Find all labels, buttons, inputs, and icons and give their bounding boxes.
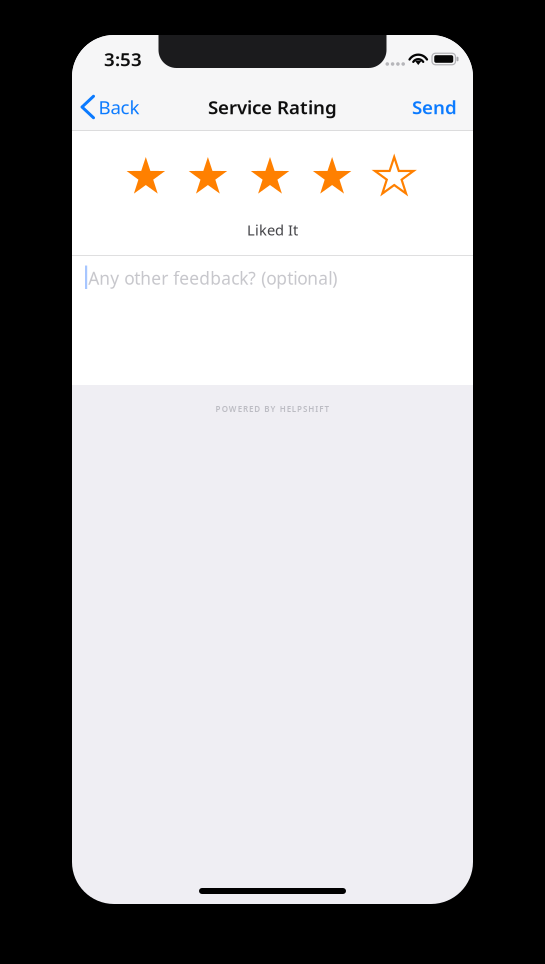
button[interactable]: Rate 3 stars	[251, 157, 289, 192]
staticText: Back	[98, 95, 139, 119]
button[interactable]: Rate 5 stars	[375, 157, 413, 192]
staticText: Send	[412, 95, 457, 119]
staticText: POWERED BY HELPSHIFT	[216, 404, 329, 414]
button[interactable]: Any other feedback? (optional)	[72, 256, 473, 385]
button[interactable]: Rate 2 stars	[189, 157, 227, 192]
button[interactable]: Rate 4 stars	[313, 157, 351, 192]
button[interactable]: Rate 1 star	[127, 157, 165, 192]
staticText: 3:53	[104, 47, 142, 71]
staticText: Liked It	[247, 220, 298, 239]
button[interactable]: Send	[412, 89, 473, 125]
staticText: Service Rating	[208, 95, 337, 119]
button[interactable]: Back	[72, 90, 139, 124]
staticText: Any other feedback? (optional)	[88, 266, 337, 289]
